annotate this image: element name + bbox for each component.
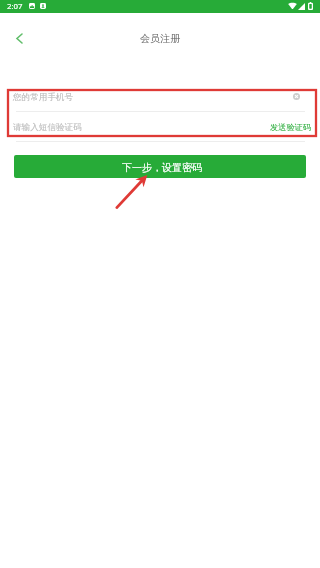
button[interactable]: 请输入短信验证码 xyxy=(8,121,258,140)
staticText: 下一步，设置密码 xyxy=(122,161,202,174)
staticText: 2:07 xyxy=(7,1,23,12)
button[interactable]: Back xyxy=(5,24,33,52)
button[interactable]: 您的常用手机号 xyxy=(8,91,315,110)
button[interactable]: 下一步，设置密码 xyxy=(14,155,306,178)
staticText: 请输入短信验证码 xyxy=(13,122,82,133)
button[interactable]: Clear text xyxy=(293,93,300,100)
button[interactable]: 发送验证码 xyxy=(270,122,311,132)
staticText: 会员注册 xyxy=(140,32,180,45)
staticText: 您的常用手机号 xyxy=(13,92,74,103)
staticText: 发送验证码 xyxy=(270,122,311,132)
